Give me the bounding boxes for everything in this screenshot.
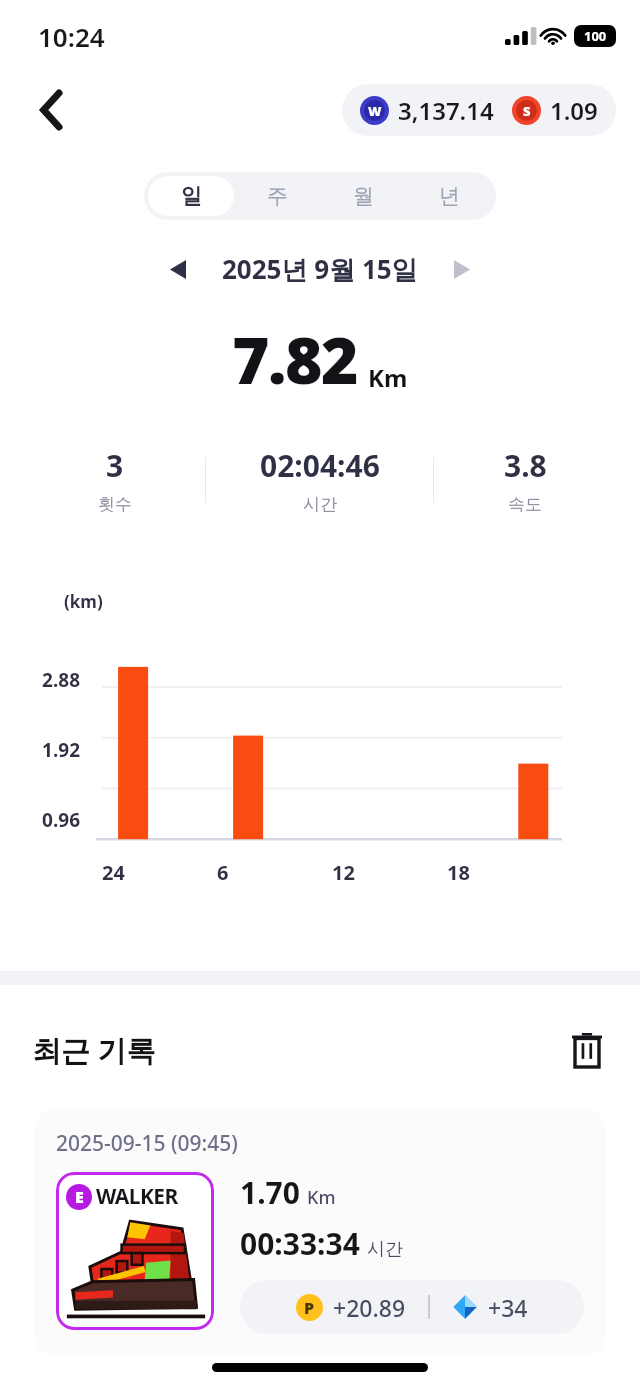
button[interactable]: 주 — [234, 176, 320, 216]
button[interactable]: W — [342, 84, 616, 136]
staticText: 최근 기록 — [32, 1030, 156, 1070]
staticText: 주 — [267, 183, 288, 209]
staticText: +34 — [488, 1292, 528, 1323]
button[interactable]: 년 — [406, 176, 492, 216]
staticText: 속도 — [508, 494, 542, 515]
staticText: W — [368, 102, 382, 120]
button[interactable]: 2025-09-15 (09:45) — [34, 1109, 606, 1356]
staticText: 횟수 — [98, 494, 132, 515]
button[interactable]: 일 — [148, 176, 234, 216]
staticText: 12 — [332, 859, 355, 886]
button[interactable]: P — [240, 1280, 584, 1334]
staticText: 7.82 — [232, 316, 358, 403]
staticText: 02:04:46 — [260, 445, 380, 486]
staticText: (km) — [64, 590, 103, 613]
button[interactable]: Next day — [440, 247, 484, 291]
staticText: WALKER — [96, 1182, 178, 1211]
button[interactable]: 월 — [320, 176, 406, 216]
staticText: Km — [368, 361, 408, 394]
staticText: 2.88 — [18, 667, 80, 693]
staticText: 3,137.14 — [398, 94, 494, 127]
staticText: 월 — [353, 183, 374, 209]
button[interactable]: Previous day — [156, 247, 200, 291]
staticText: 일 — [181, 183, 202, 209]
staticText: 1.92 — [18, 737, 80, 763]
staticText: 0.96 — [18, 807, 80, 833]
staticText: 년 — [439, 183, 460, 209]
staticText: 3.8 — [504, 445, 547, 486]
staticText: 100 — [584, 27, 607, 45]
staticText: 18 — [447, 859, 470, 886]
staticText: +20.89 — [333, 1292, 406, 1323]
staticText: E — [75, 1186, 84, 1208]
staticText: P — [304, 1297, 315, 1319]
staticText: 1.70 — [240, 1172, 300, 1213]
button[interactable]: Back — [24, 82, 80, 138]
staticText: 3 — [106, 445, 124, 486]
staticText: S — [523, 102, 531, 120]
staticText: 10:24 — [38, 19, 105, 54]
staticText: 24 — [102, 859, 125, 886]
staticText: Km — [307, 1185, 336, 1210]
staticText: 6 — [217, 859, 229, 886]
staticText: 시간 — [303, 494, 337, 515]
button[interactable]: Delete records — [562, 1025, 612, 1075]
staticText: 2025-09-15 (09:45) — [56, 1129, 238, 1158]
staticText: 1.09 — [550, 94, 598, 127]
staticText: 시간 — [367, 1238, 403, 1261]
staticText: 2025년 9월 15일 — [222, 251, 418, 287]
staticText: 00:33:34 — [240, 1223, 360, 1264]
